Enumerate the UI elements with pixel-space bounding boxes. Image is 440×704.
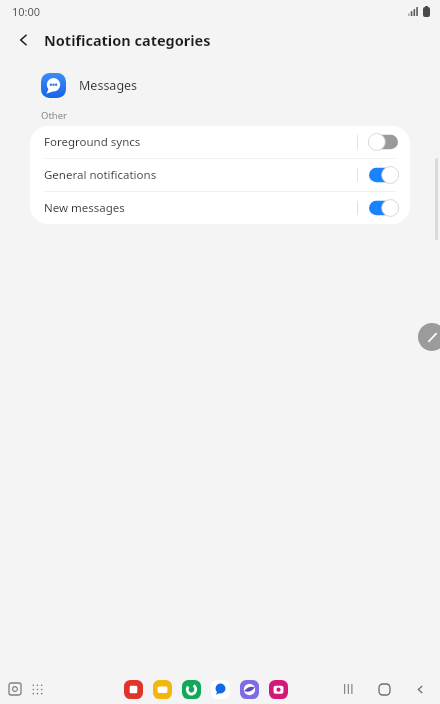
button[interactable]: Gallery xyxy=(123,679,144,700)
button[interactable]: On xyxy=(369,166,398,184)
button[interactable]: My Files xyxy=(152,679,173,700)
staticText: General notifications xyxy=(44,167,357,183)
button[interactable]: Edit xyxy=(418,323,440,351)
button[interactable]: Off xyxy=(369,133,398,151)
button[interactable]: Back xyxy=(10,26,38,54)
button[interactable]: Camera xyxy=(268,679,289,700)
button[interactable]: Messages xyxy=(210,679,231,700)
button[interactable]: Home xyxy=(372,677,396,701)
staticText: Notification categories xyxy=(44,30,211,50)
button[interactable]: General notifications xyxy=(30,159,410,191)
button[interactable]: Apps xyxy=(26,678,48,700)
button[interactable]: Recents xyxy=(336,677,360,701)
button[interactable]: Recent apps xyxy=(4,678,26,700)
button[interactable]: Internet xyxy=(239,679,260,700)
button[interactable]: New messages xyxy=(30,192,410,224)
button[interactable]: Back xyxy=(408,677,432,701)
button[interactable]: Phone xyxy=(181,679,202,700)
staticText: New messages xyxy=(44,200,357,216)
staticText: 10:00 xyxy=(12,4,41,19)
button[interactable]: Foreground syncs xyxy=(30,126,410,158)
staticText: Other xyxy=(41,109,68,122)
button[interactable]: On xyxy=(369,199,398,217)
staticText: Messages xyxy=(79,77,138,94)
staticText: Foreground syncs xyxy=(44,134,357,150)
